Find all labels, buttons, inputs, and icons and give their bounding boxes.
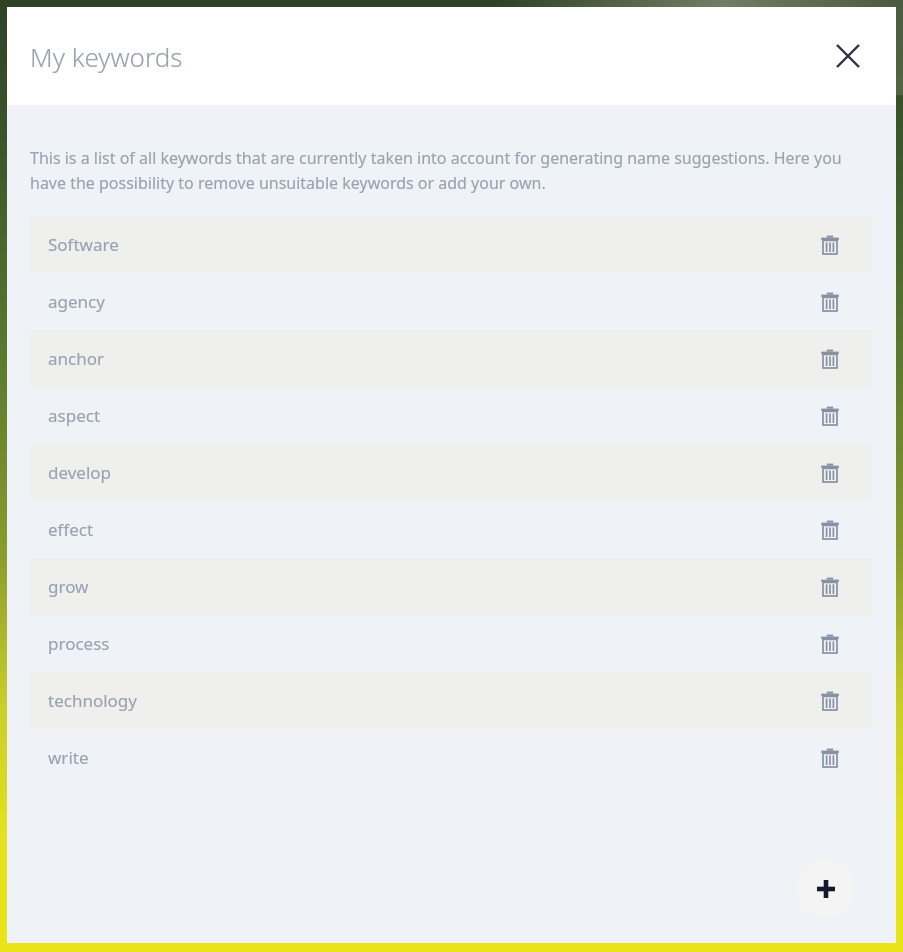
button[interactable]: grow [30,558,873,615]
button[interactable]: Delete develop [811,454,849,492]
button[interactable]: Delete agency [811,283,849,321]
staticText: grow [48,575,811,598]
button[interactable]: aspect [30,387,873,444]
staticText: My keywords [30,39,183,74]
staticText: technology [48,689,811,712]
staticText: agency [48,290,811,313]
button[interactable]: Delete grow [811,568,849,606]
button[interactable]: Delete write [811,739,849,777]
button[interactable]: process [30,615,873,672]
button[interactable]: Delete aspect [811,397,849,435]
staticText: write [48,746,811,769]
button[interactable]: Delete technology [811,682,849,720]
staticText: anchor [48,347,811,370]
button[interactable]: write [30,729,873,786]
staticText: develop [48,461,811,484]
button[interactable]: develop [30,444,873,501]
button[interactable]: Close [826,34,870,78]
staticText: This is a list of all keywords that are … [30,147,863,193]
staticText: effect [48,518,811,541]
staticText: process [48,632,811,655]
button[interactable]: effect [30,501,873,558]
staticText: Software [48,233,811,256]
button[interactable]: technology [30,672,873,729]
button[interactable]: Delete Software [811,226,849,264]
staticText: aspect [48,404,811,427]
button[interactable]: anchor [30,330,873,387]
button[interactable]: Add keyword [797,860,854,917]
button[interactable]: Delete effect [811,511,849,549]
button[interactable]: Software [30,216,873,273]
button[interactable]: Delete anchor [811,340,849,378]
button[interactable]: Delete process [811,625,849,663]
button[interactable]: agency [30,273,873,330]
